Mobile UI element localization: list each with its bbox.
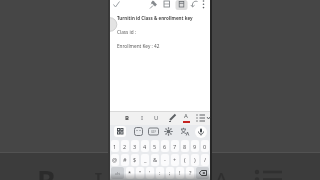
button[interactable] <box>150 0 160 10</box>
button[interactable]: # <box>121 154 129 166</box>
button[interactable]: ! <box>176 167 184 179</box>
button[interactable]: / <box>201 154 209 166</box>
button[interactable]: 3 <box>131 140 139 152</box>
button[interactable]: $ <box>131 154 139 166</box>
button[interactable] <box>164 127 173 136</box>
staticText: * <box>128 169 132 177</box>
button[interactable]: I <box>141 114 144 122</box>
button[interactable]: B <box>125 114 129 122</box>
button[interactable] <box>200 0 208 10</box>
button[interactable]: A <box>183 112 192 123</box>
button[interactable]: 2 <box>121 140 129 152</box>
staticText: ( <box>184 156 186 164</box>
staticText: " <box>139 169 142 177</box>
button[interactable]: ? <box>186 167 194 179</box>
button[interactable] <box>162 0 172 10</box>
staticText: Class id : <box>117 29 137 35</box>
staticText: ; <box>169 169 171 177</box>
staticText: ? <box>189 169 192 177</box>
staticText: ) <box>194 156 196 164</box>
staticText: 1 <box>113 143 117 150</box>
button[interactable]: ' <box>146 167 154 179</box>
staticText: 6 <box>163 143 167 150</box>
staticText: ' <box>149 169 151 177</box>
button[interactable]: * <box>126 167 134 179</box>
staticText: GIF <box>151 130 157 134</box>
button[interactable] <box>196 167 209 179</box>
button[interactable]: 8 <box>181 140 189 152</box>
staticText: _ <box>144 156 147 164</box>
button[interactable]: 5 <box>151 140 159 152</box>
staticText: A <box>184 112 188 120</box>
button[interactable] <box>195 126 207 138</box>
button[interactable]: U <box>154 114 159 122</box>
staticText: / <box>204 156 207 164</box>
staticText: 3 <box>133 143 137 150</box>
staticText: =\< <box>115 171 121 176</box>
button[interactable]: 0 <box>201 140 209 152</box>
button[interactable] <box>168 113 178 123</box>
staticText: - <box>164 156 166 164</box>
staticText: & <box>153 156 158 164</box>
button[interactable]: ( <box>181 154 189 166</box>
button[interactable]: GIF <box>148 127 159 136</box>
button[interactable]: 4 <box>141 140 149 152</box>
staticText: B <box>37 162 56 180</box>
button[interactable]: 7 <box>171 140 179 152</box>
staticText: 5 <box>153 143 157 150</box>
button[interactable]: _ <box>141 154 149 166</box>
staticText: : <box>159 169 161 177</box>
button[interactable]: ) <box>191 154 199 166</box>
button[interactable] <box>134 127 143 136</box>
staticText: Enrollment Key : 42 <box>117 43 160 49</box>
button[interactable] <box>114 126 126 137</box>
staticText: I <box>94 163 103 180</box>
staticText: A <box>213 163 230 180</box>
staticText: ! <box>179 169 181 177</box>
staticText: $ <box>133 156 137 164</box>
button[interactable]: : <box>156 167 164 179</box>
button[interactable]: 9 <box>191 140 199 152</box>
button[interactable] <box>196 113 210 123</box>
button[interactable]: =\< <box>111 167 124 179</box>
staticText: 2 <box>123 143 127 150</box>
staticText: 8 <box>183 143 187 150</box>
button[interactable] <box>189 0 199 10</box>
staticText: 9 <box>193 143 197 150</box>
button[interactable] <box>175 0 188 11</box>
button[interactable]: @ <box>111 154 119 166</box>
button[interactable] <box>180 127 189 136</box>
button[interactable]: ; <box>166 167 174 179</box>
staticText: + <box>173 156 177 164</box>
button[interactable]: 1 <box>111 140 119 152</box>
staticText: 0 <box>203 143 207 150</box>
button[interactable]: & <box>151 154 159 166</box>
staticText: 4 <box>143 143 147 150</box>
button[interactable]: + <box>171 154 179 166</box>
staticText: 7 <box>173 143 177 150</box>
staticText: Turnitin id Class & enrollment key <box>117 15 193 21</box>
button[interactable]: 6 <box>161 140 169 152</box>
staticText: @ <box>112 156 118 164</box>
button[interactable]: " <box>136 167 144 179</box>
button[interactable]: - <box>161 154 169 166</box>
staticText: # <box>123 156 127 164</box>
